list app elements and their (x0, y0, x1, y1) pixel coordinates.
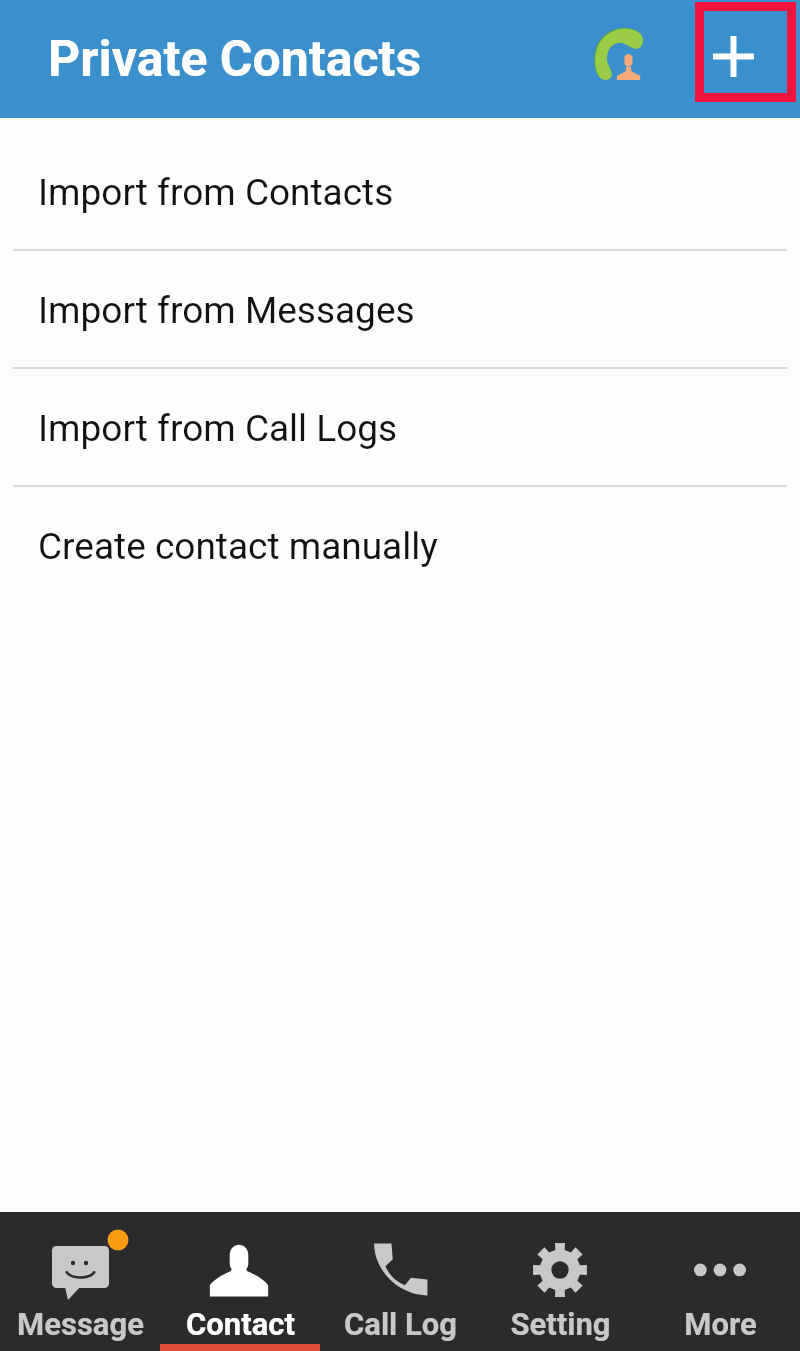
staticText: Import from Call Logs (38, 407, 398, 450)
button[interactable]: Import from Contacts (0, 133, 800, 251)
button[interactable]: Add contact (695, 2, 796, 102)
staticText: Import from Contacts (38, 171, 394, 214)
button[interactable]: Import from Messages (0, 251, 800, 369)
button[interactable]: Contacts (578, 14, 658, 100)
staticText: Private Contacts (48, 30, 422, 89)
staticText: Call Log (344, 1306, 457, 1342)
button[interactable]: Create contact manually (0, 487, 800, 605)
staticText: Create contact manually (38, 525, 438, 568)
button[interactable]: Message (0, 1212, 160, 1351)
staticText: Message (17, 1306, 144, 1342)
button[interactable]: Contact (160, 1212, 320, 1351)
staticText: Import from Messages (38, 289, 415, 332)
button[interactable]: Setting (480, 1212, 640, 1351)
button[interactable]: Call Log (320, 1212, 480, 1351)
button[interactable]: Import from Call Logs (0, 369, 800, 487)
staticText: Setting (510, 1306, 611, 1342)
staticText: More (684, 1306, 757, 1342)
staticText: Contact (186, 1306, 295, 1342)
button[interactable]: More (640, 1212, 800, 1351)
